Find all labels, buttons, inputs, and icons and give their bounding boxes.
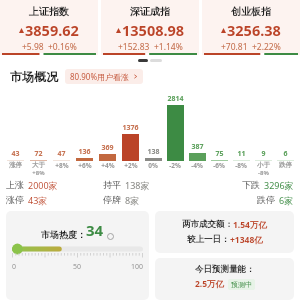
staticText: 138 — [147, 147, 160, 157]
staticText: +5.98 — [22, 41, 44, 53]
staticText: 9 — [261, 149, 266, 159]
staticText: 跌停 — [279, 161, 292, 169]
button[interactable]: 上证指数 — [0, 0, 98, 55]
staticText: 上涨 — [6, 179, 24, 190]
staticText: -2% — [169, 161, 181, 170]
staticText: 80.90%用户看涨 — [70, 71, 130, 82]
button[interactable]: 预测中 — [228, 279, 255, 290]
staticText: 47 — [57, 149, 66, 159]
staticText: 涨停 — [6, 194, 24, 205]
staticText: 0 — [12, 262, 55, 272]
staticText: 3296家 — [264, 179, 294, 191]
staticText: 涨停 — [9, 161, 22, 169]
staticText: 138家 — [125, 179, 150, 191]
staticText: -8% — [235, 161, 247, 170]
staticText: 387 — [191, 142, 204, 152]
staticText: +4% — [101, 161, 115, 170]
staticText: 2000家 — [28, 179, 58, 191]
button[interactable]: 深证成指 — [101, 0, 199, 55]
staticText: 2.5万亿 — [195, 278, 225, 290]
staticText: 今日预测量能： — [195, 264, 255, 275]
button[interactable]: 创业板指 — [202, 0, 300, 55]
staticText: 创业板指 — [231, 5, 271, 18]
button[interactable]: 80.90%用户看涨 — [65, 69, 143, 84]
staticText: 6家 — [279, 194, 294, 206]
staticText: 0% — [148, 161, 158, 170]
staticText: 43 — [11, 149, 20, 159]
staticText: 100 — [99, 262, 143, 272]
staticText: 72 — [34, 149, 43, 159]
staticText: 369 — [101, 143, 114, 153]
staticText: 深证成指 — [130, 5, 170, 18]
staticText: +6% — [78, 161, 92, 170]
staticText: +0.16% — [48, 41, 77, 53]
staticText: 75 — [215, 149, 224, 159]
staticText: -4% — [191, 161, 203, 170]
button[interactable]: 市场热度： — [6, 211, 149, 300]
staticText: 11 — [237, 149, 246, 159]
button[interactable]: 今日预测量能： — [155, 258, 294, 300]
staticText: 跌停 — [257, 194, 275, 205]
staticText: -6% — [213, 161, 225, 170]
other: 说明 — [107, 233, 114, 240]
staticText: 34 — [86, 220, 104, 240]
staticText: +1.14% — [154, 41, 183, 53]
staticText: +1348亿 — [230, 234, 263, 246]
staticText: 13508.98 — [122, 20, 185, 40]
staticText: 停牌 — [103, 194, 121, 205]
staticText: -8% — [258, 169, 269, 177]
staticText: +2% — [124, 161, 138, 170]
staticText: 136 — [78, 147, 91, 157]
staticText: 两市成交额： — [182, 219, 233, 230]
staticText: 1376 — [122, 123, 139, 133]
staticText: 3256.38 — [227, 20, 281, 40]
staticText: 大于 — [32, 161, 45, 169]
staticText: 3859.62 — [25, 20, 79, 40]
staticText: 6 — [283, 149, 288, 159]
staticText: +8% — [32, 169, 45, 177]
staticText: 8家 — [125, 194, 140, 206]
staticText: 43家 — [28, 194, 48, 206]
staticText: 较上一日： — [187, 234, 230, 245]
staticText: 2814 — [167, 94, 184, 104]
staticText: 预测中 — [231, 280, 252, 289]
staticText: +70.81 — [221, 41, 248, 53]
staticText: +2.22% — [252, 41, 281, 53]
staticText: 小于 — [257, 161, 270, 169]
button[interactable]: 两市成交额： — [155, 211, 294, 253]
staticText: 市场热度： — [41, 229, 86, 240]
staticText: 持平 — [103, 179, 121, 190]
staticText: +8% — [55, 161, 69, 170]
staticText: 下跌 — [242, 179, 260, 190]
staticText: 市场概况 — [10, 69, 58, 84]
staticText: 50 — [55, 262, 99, 272]
staticText: +152.83 — [118, 41, 150, 53]
staticText: 上证指数 — [29, 5, 69, 18]
staticText: 1.54万亿 — [233, 219, 267, 231]
